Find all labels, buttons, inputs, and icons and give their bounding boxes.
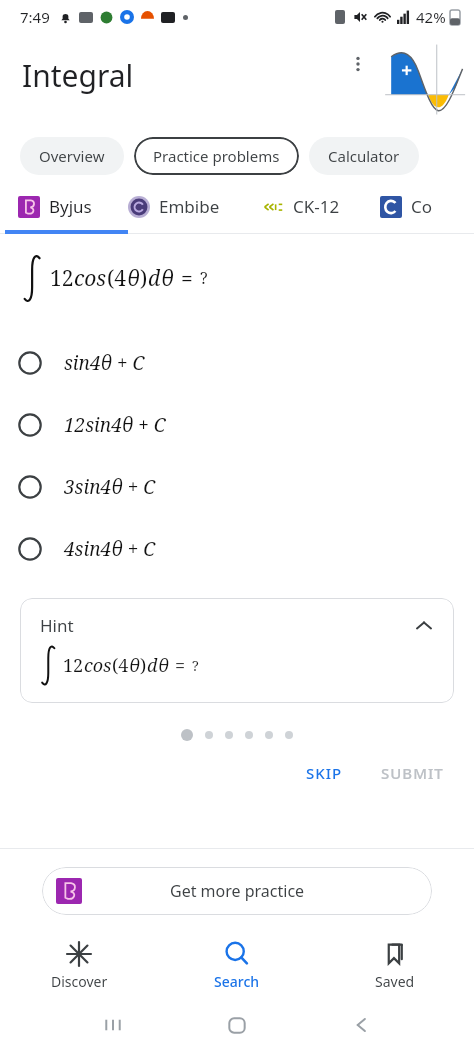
button[interactable]: Calculator — [309, 137, 419, 175]
staticText: θ — [127, 264, 140, 293]
staticText: = — [175, 653, 186, 678]
button[interactable]: Hint — [20, 598, 454, 703]
staticText: θ — [158, 653, 169, 678]
button[interactable]: CK-12 — [262, 195, 340, 218]
staticText: Practice problems — [153, 146, 280, 166]
button[interactable]: Discover — [0, 935, 158, 997]
staticText: 12 — [50, 264, 74, 293]
staticText: SKIP — [306, 763, 343, 783]
staticText: Overview — [39, 146, 105, 166]
button[interactable]: Overview — [20, 137, 124, 175]
other: Recents — [101, 1013, 125, 1037]
staticText: Search — [214, 972, 260, 991]
staticText: Discover — [51, 972, 108, 991]
button[interactable]: Saved — [316, 935, 474, 997]
staticText: θ — [161, 264, 174, 293]
staticText: 3sin4θ + C — [64, 474, 156, 500]
staticText: d — [148, 264, 161, 293]
staticText: (4 — [107, 264, 127, 293]
staticText: 12 — [63, 653, 84, 678]
button[interactable]: Practice problems — [134, 137, 299, 175]
staticText: SUBMIT — [381, 763, 444, 783]
staticText: = — [181, 264, 193, 293]
staticText: Hint — [40, 614, 74, 637]
staticText: 42% — [416, 7, 446, 27]
staticText: ) — [140, 264, 148, 293]
staticText: Integral — [22, 55, 134, 96]
staticText: ) — [140, 653, 147, 678]
button[interactable]: SUBMIT — [371, 755, 454, 791]
staticText: d — [147, 653, 158, 678]
staticText: sin4θ + C — [64, 350, 145, 376]
button[interactable]: 4sin4θ + C — [0, 518, 474, 580]
staticText: 7:49 — [20, 7, 50, 27]
staticText: Saved — [375, 972, 415, 991]
button[interactable]: Embibe — [128, 195, 220, 218]
staticText: cos — [74, 264, 107, 293]
button[interactable]: Co — [380, 195, 433, 218]
button[interactable]: sin4θ + C — [0, 332, 474, 394]
button[interactable]: More options — [338, 44, 378, 84]
button[interactable]: SKIP — [296, 755, 353, 791]
staticText: (4 — [112, 653, 129, 678]
button[interactable]: Get more practice — [42, 867, 432, 915]
button[interactable]: Search — [158, 935, 316, 997]
staticText: 12sin4θ + C — [64, 412, 166, 438]
other: Back — [350, 1013, 374, 1037]
staticText: ? — [192, 656, 199, 675]
staticText: θ — [129, 653, 140, 678]
staticText: Byjus — [49, 195, 92, 218]
staticText: Calculator — [328, 146, 400, 166]
staticText: Get more practice — [170, 880, 305, 902]
staticText: CK-12 — [293, 195, 340, 218]
staticText: ? — [200, 267, 208, 289]
button[interactable]: 12sin4θ + C — [0, 394, 474, 456]
staticText: cos — [84, 653, 112, 678]
staticText: Embibe — [159, 195, 220, 218]
button[interactable]: 3sin4θ + C — [0, 456, 474, 518]
other: Home — [225, 1013, 249, 1037]
staticText: 4sin4θ + C — [64, 536, 156, 562]
staticText: Co — [411, 195, 433, 218]
button[interactable]: Byjus — [18, 195, 92, 218]
